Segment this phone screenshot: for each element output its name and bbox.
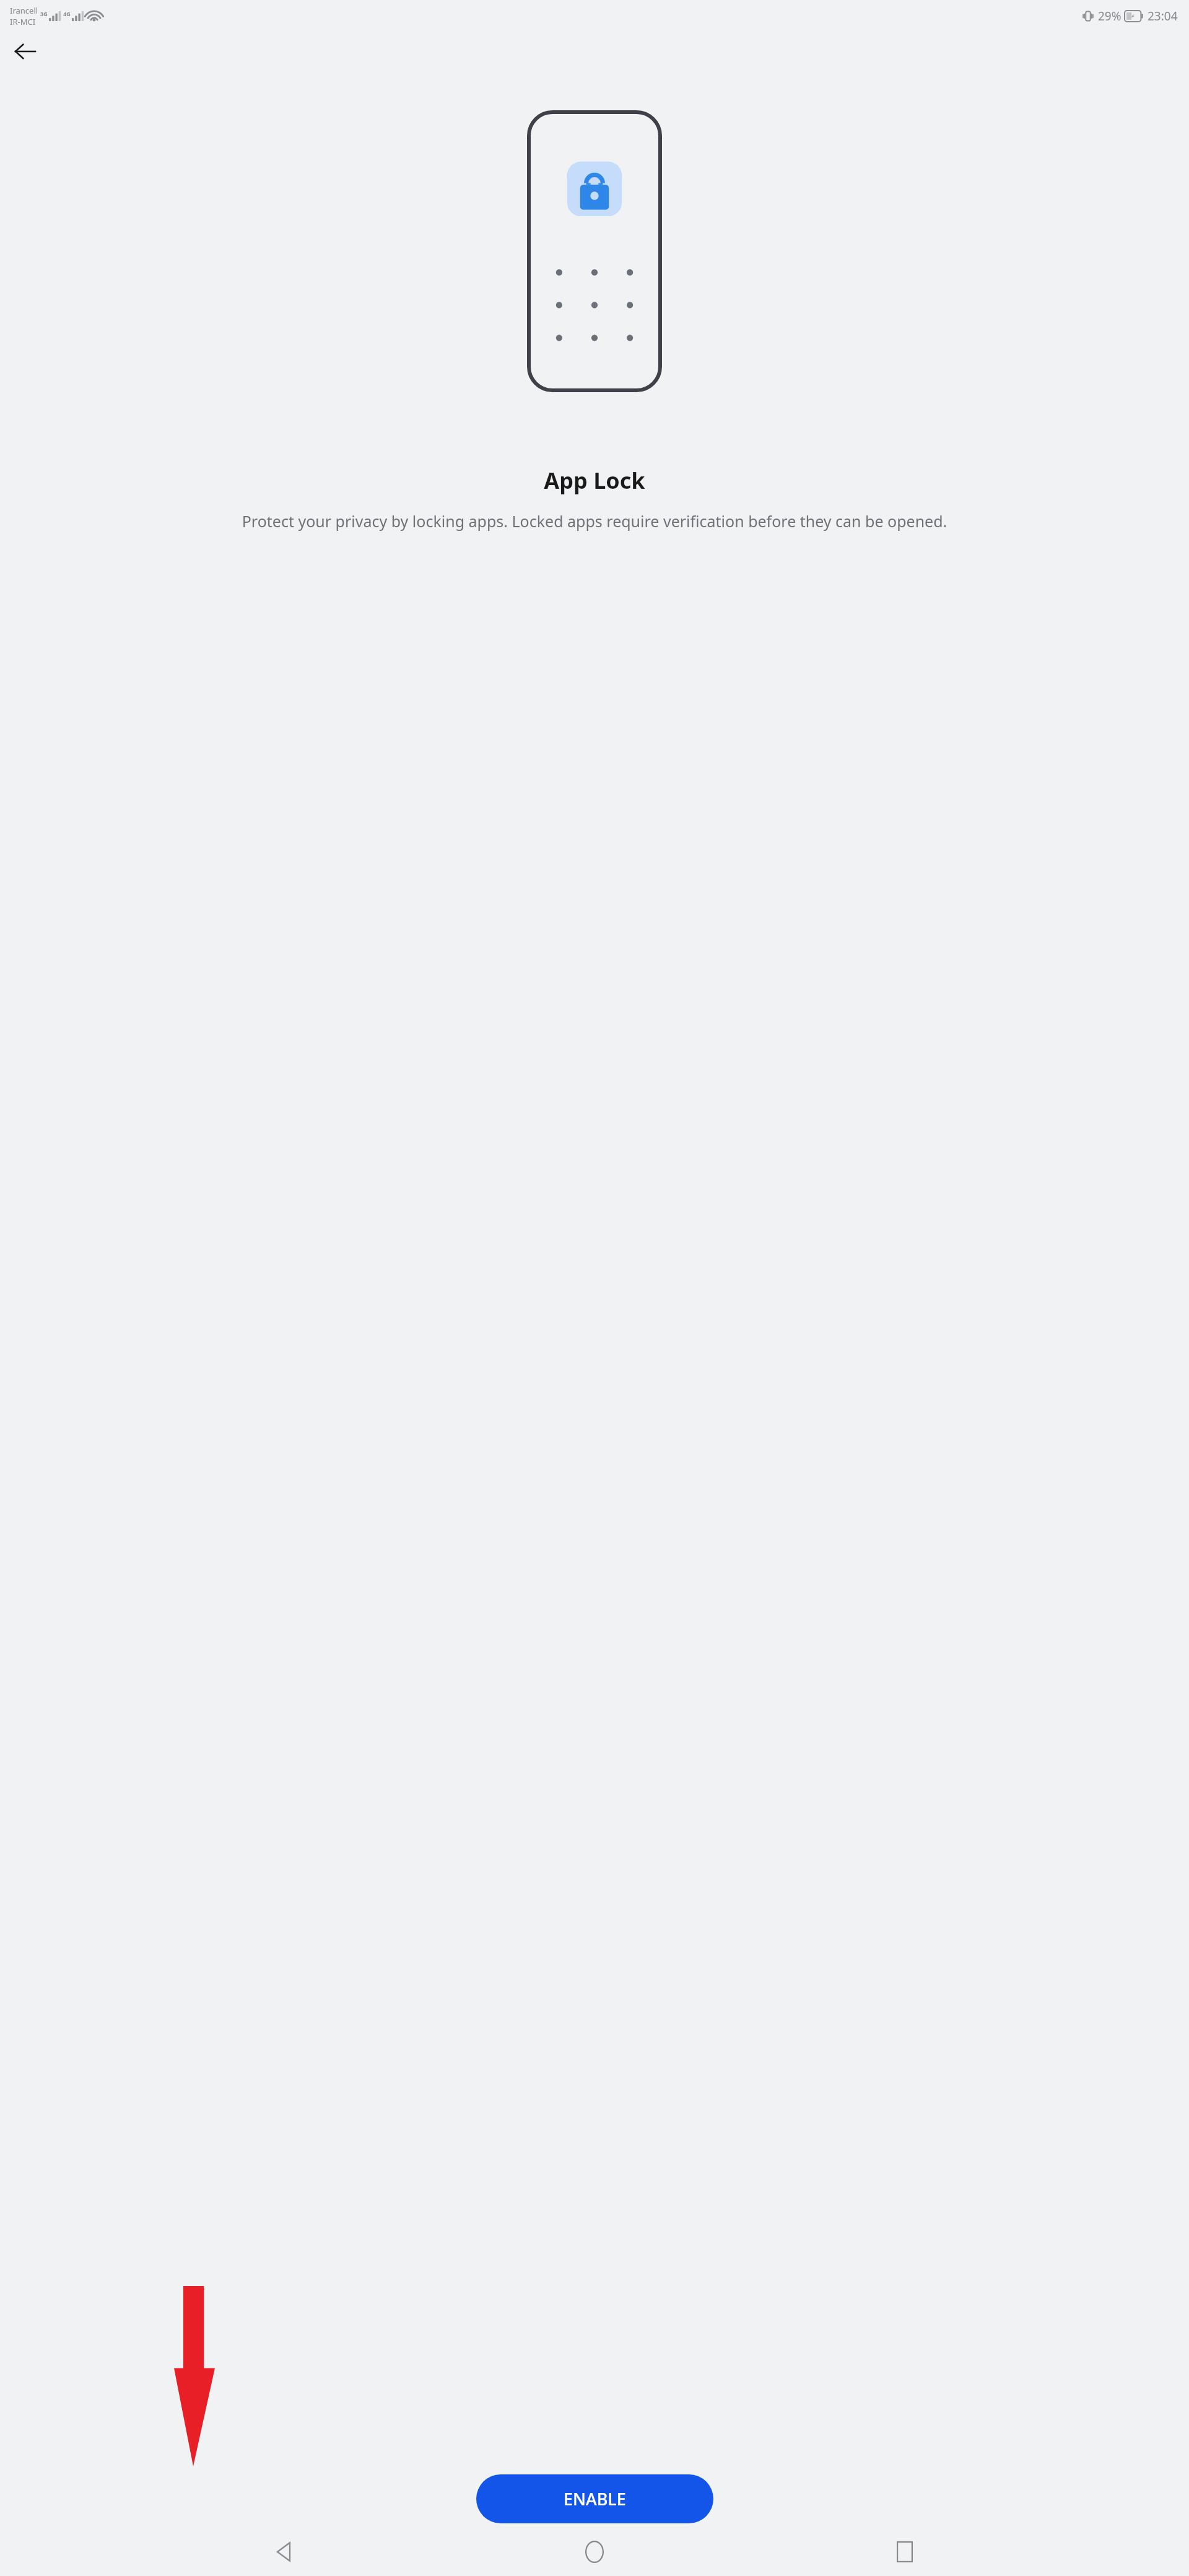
staticText: ENABLE	[564, 2487, 626, 2510]
staticText: App Lock	[0, 465, 1189, 496]
staticText: IR-MCI	[10, 16, 36, 27]
staticText: 23:04	[1148, 8, 1178, 24]
button[interactable]: Back	[7, 34, 42, 69]
staticText: Protect your privacy by locking apps. Lo…	[16, 510, 1173, 532]
staticText: 3G	[40, 10, 48, 17]
staticText: 4G	[63, 10, 71, 17]
button[interactable]: Home	[568, 2528, 621, 2576]
button[interactable]: Back	[258, 2528, 310, 2576]
button[interactable]: ENABLE	[476, 2474, 713, 2523]
staticText: 29%	[1098, 8, 1121, 24]
staticText: Irancell	[10, 5, 38, 16]
button[interactable]: Recent apps	[879, 2528, 931, 2576]
